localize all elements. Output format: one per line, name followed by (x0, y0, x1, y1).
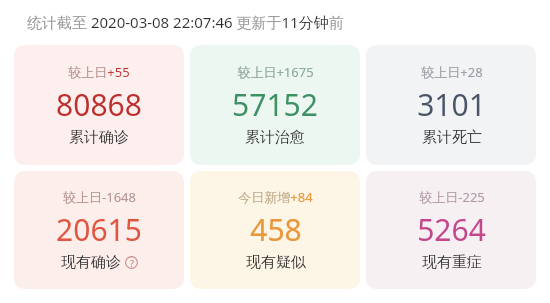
button[interactable]: Help about 现有确诊 (125, 256, 138, 269)
staticText: 80868 (56, 84, 142, 125)
staticText: 较上日+55 (68, 63, 130, 81)
staticText: ? (130, 257, 134, 269)
staticText: 458 (250, 209, 302, 250)
staticText: 现有疑似 (246, 253, 306, 272)
staticText: 累计死亡 (422, 128, 482, 147)
button[interactable]: 较上日+55 (14, 45, 184, 165)
button[interactable]: 较上日+1675 (190, 45, 360, 165)
staticText: 3101 (417, 84, 486, 125)
staticText: 20615 (56, 209, 142, 250)
button[interactable]: 较上日-225 (366, 171, 536, 289)
staticText: 累计确诊 (69, 128, 129, 147)
staticText: 较上日-1648 (63, 188, 136, 206)
staticText: 今日新增+84 (238, 188, 313, 206)
staticText: 较上日+1675 (237, 63, 314, 81)
button[interactable]: 今日新增+84 (190, 171, 360, 289)
staticText: 现有确诊 (61, 253, 121, 272)
staticText: 57152 (232, 84, 318, 125)
staticText: 5264 (417, 209, 486, 250)
staticText: 较上日+28 (421, 63, 483, 81)
staticText: 累计治愈 (245, 128, 305, 147)
button[interactable]: 较上日+28 (366, 45, 536, 165)
staticText: 较上日-225 (419, 188, 485, 206)
button[interactable]: 较上日-1648 (14, 171, 184, 289)
staticText: 统计截至 2020-03-08 22:07:46 更新于11分钟前 (27, 12, 344, 32)
staticText: 现有重症 (422, 253, 482, 272)
